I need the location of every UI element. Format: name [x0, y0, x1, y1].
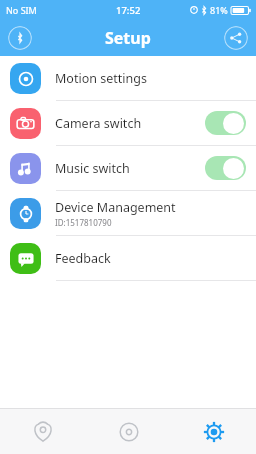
staticText: Device Management: [55, 199, 176, 216]
staticText: Feedback: [55, 250, 111, 267]
button[interactable]: Camera switch: [0, 101, 256, 145]
staticText: 81%: [210, 4, 228, 16]
button[interactable]: Motion settings: [0, 56, 256, 100]
button[interactable]: Feedback: [0, 236, 256, 280]
button[interactable]: Share: [224, 26, 248, 50]
button[interactable]: Bluetooth: [8, 26, 32, 50]
staticText: 17:52: [116, 4, 141, 17]
staticText: Motion settings: [55, 70, 147, 87]
staticText: Setup: [105, 27, 151, 49]
button[interactable]: Setup: [171, 409, 256, 454]
staticText: Camera switch: [55, 115, 142, 132]
button[interactable]: Device Management: [0, 191, 256, 235]
button[interactable]: Track: [86, 409, 171, 454]
button[interactable]: Music switch: [0, 146, 256, 190]
button[interactable]: Location: [0, 409, 86, 454]
button[interactable]: Toggle: [205, 111, 246, 135]
staticText: ID:1517810790: [55, 217, 112, 228]
staticText: Music switch: [55, 160, 130, 177]
button[interactable]: Toggle: [205, 156, 246, 180]
staticText: No SIM: [6, 4, 37, 16]
